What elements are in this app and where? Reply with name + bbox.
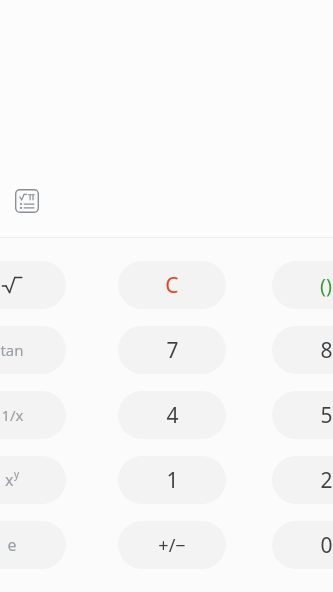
staticText: e (7, 534, 17, 556)
button[interactable]: tan (0, 326, 66, 374)
button[interactable]: Scientific mode (10, 184, 44, 218)
button[interactable]: 4 (118, 391, 226, 439)
button[interactable]: +/− (118, 521, 226, 569)
button[interactable]: x to the power of y (0, 456, 66, 504)
staticText: 1 (166, 466, 179, 495)
button[interactable]: 0 (272, 521, 333, 569)
button[interactable]: 5 (272, 391, 333, 439)
button[interactable]: 1 (118, 456, 226, 504)
staticText: x (5, 469, 14, 491)
button[interactable]: Square root (0, 261, 66, 309)
staticText: 4 (166, 401, 179, 430)
button[interactable]: () (272, 261, 333, 309)
staticText: 8 (320, 336, 333, 365)
button[interactable]: 8 (272, 326, 333, 374)
staticText: tan (0, 340, 24, 360)
button[interactable]: 2 (272, 456, 333, 504)
button[interactable]: 1/x (0, 391, 66, 439)
staticText: 5 (320, 401, 333, 430)
staticText: () (320, 272, 332, 299)
staticText: 1/x (1, 405, 24, 425)
button[interactable]: e (0, 521, 66, 569)
staticText: y (14, 467, 20, 481)
button[interactable]: C (118, 261, 226, 309)
staticText: +/− (158, 533, 186, 558)
staticText: C (165, 271, 179, 300)
staticText: 7 (166, 336, 179, 365)
staticText: 0 (320, 531, 333, 560)
staticText: 2 (320, 466, 333, 495)
button[interactable]: 7 (118, 326, 226, 374)
